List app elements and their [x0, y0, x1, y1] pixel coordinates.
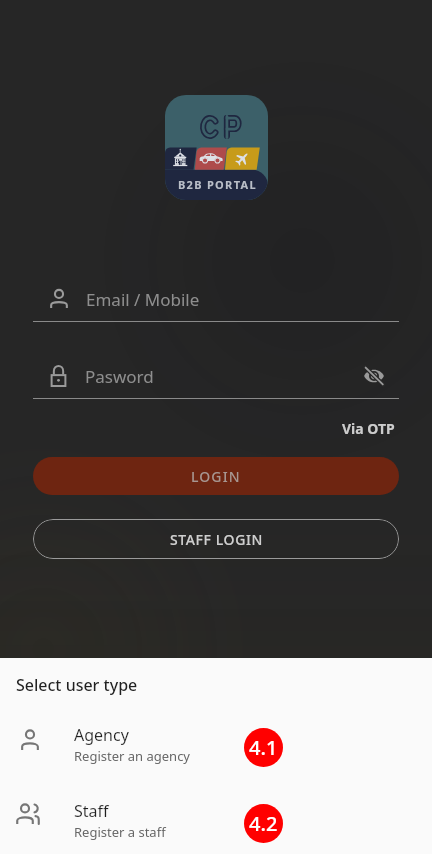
staticText: Register an agency	[74, 747, 190, 765]
staticText: Pasword	[85, 365, 154, 388]
staticText: STAFF LOGIN	[170, 530, 263, 549]
staticText: Register a staff	[74, 823, 166, 841]
button[interactable]: Toggle password visibility	[363, 366, 385, 386]
staticText: Staff	[74, 800, 109, 822]
button[interactable]: Agency	[0, 716, 432, 772]
staticText: Email / Mobile	[86, 288, 200, 311]
staticText: Via OTP	[342, 419, 395, 438]
button[interactable]: Staff	[0, 792, 432, 848]
staticText: 4.2	[249, 810, 278, 837]
button[interactable]: LOGIN	[33, 457, 399, 495]
staticText: LOGIN	[191, 467, 241, 486]
staticText: Select user type	[16, 674, 138, 696]
button[interactable]: STAFF LOGIN	[33, 519, 399, 559]
staticText: 4.1	[249, 734, 278, 761]
staticText: B2B PORTAL	[178, 177, 257, 192]
staticText: Agency	[74, 724, 129, 746]
button[interactable]: Via OTP	[342, 419, 395, 438]
